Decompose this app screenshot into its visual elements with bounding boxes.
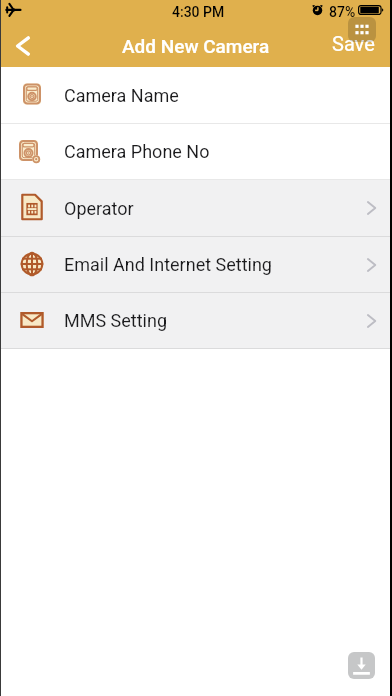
button[interactable]: Save — [326, 26, 381, 61]
button[interactable]: Camera Name — [0, 67, 392, 123]
button[interactable]: Operator — [0, 180, 392, 236]
button[interactable]: Back — [2, 26, 42, 66]
staticText: 87% — [329, 4, 356, 20]
staticText: Add New Camera — [122, 35, 270, 57]
button[interactable]: MMS Setting — [0, 293, 392, 348]
button[interactable]: Camera Phone No — [0, 124, 392, 179]
staticText: Camera Phone No — [64, 141, 210, 162]
staticText: Camera Name — [64, 85, 179, 106]
button[interactable]: Download — [348, 652, 375, 679]
staticText: Save — [332, 32, 375, 55]
button[interactable]: Email And Internet Setting — [0, 237, 392, 292]
staticText: MMS Setting — [64, 310, 168, 331]
staticText: Operator — [64, 198, 134, 219]
staticText: 4:30 PM — [172, 4, 225, 20]
staticText: Email And Internet Setting — [64, 254, 272, 275]
button[interactable]: Assistive menu — [348, 17, 376, 42]
